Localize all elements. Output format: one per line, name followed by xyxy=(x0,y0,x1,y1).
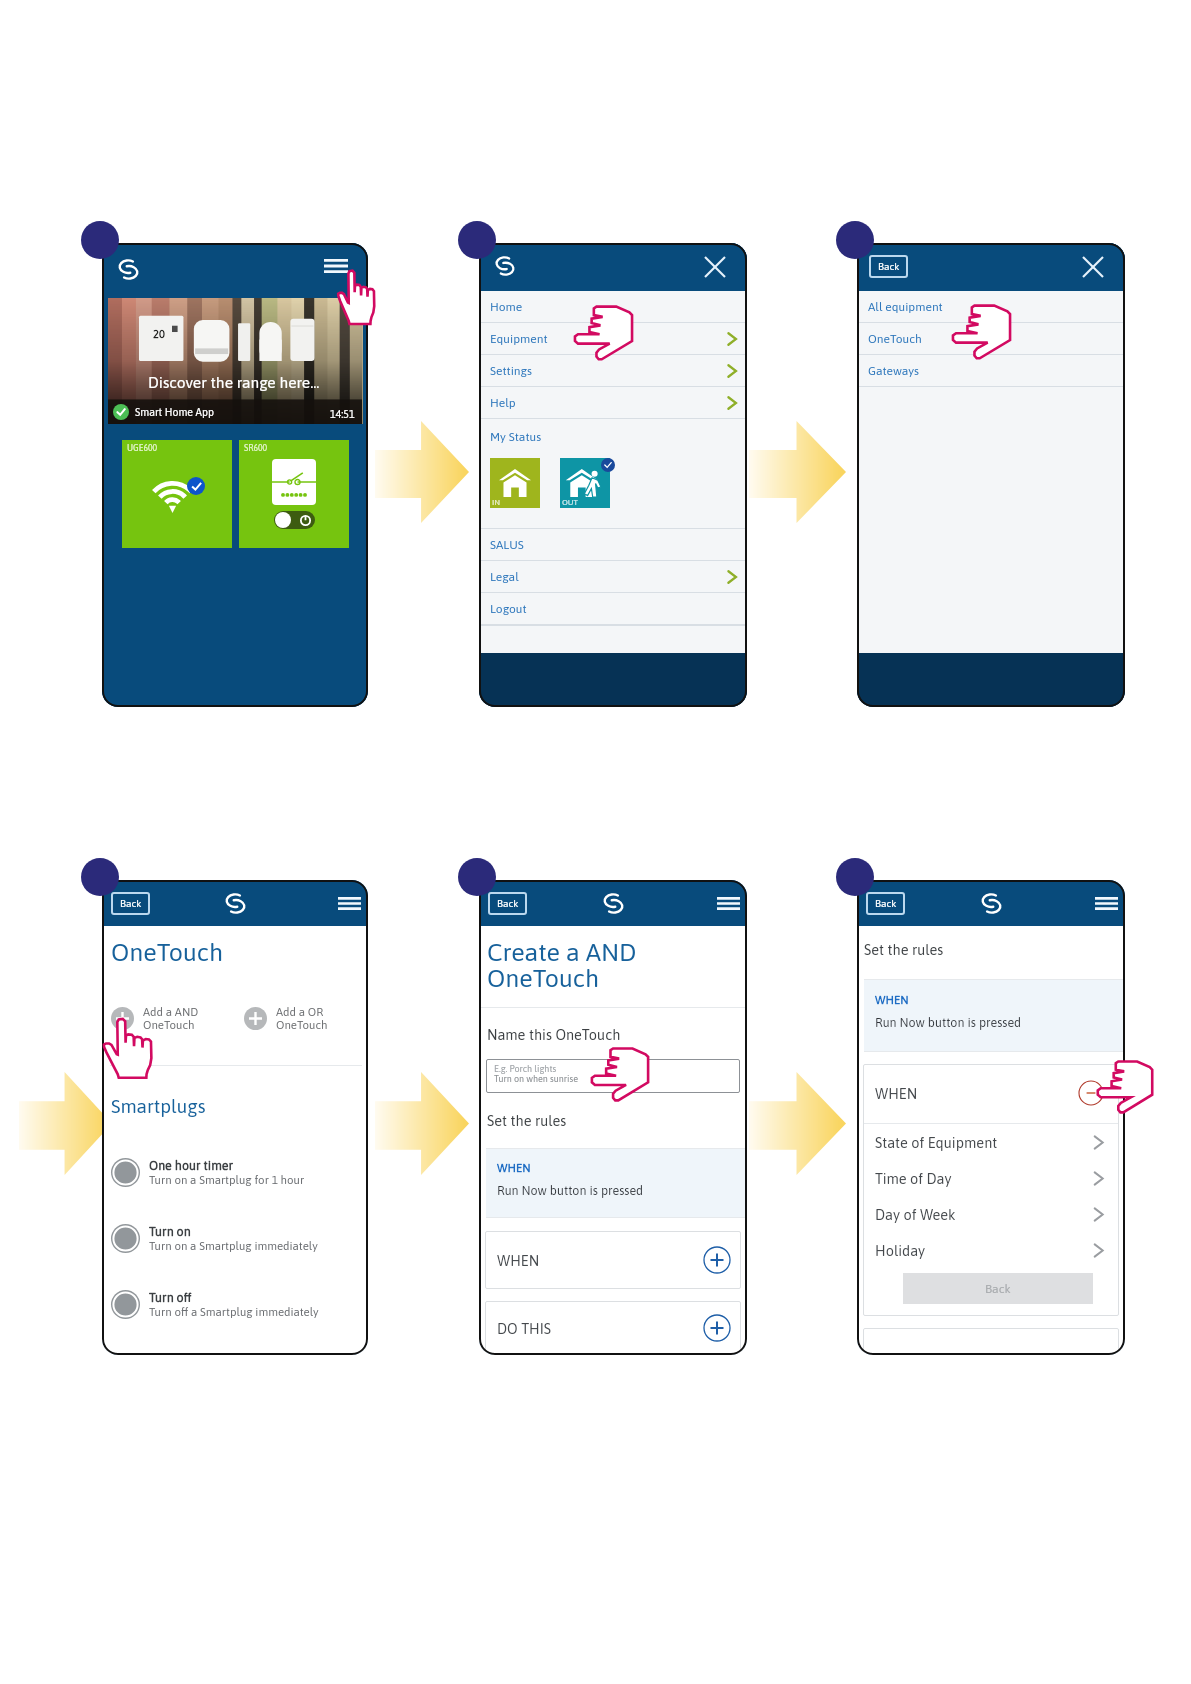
button[interactable]: Home xyxy=(479,291,747,322)
button[interactable]: SR600 xyxy=(239,440,349,548)
staticText: Smartplugs xyxy=(111,1095,206,1117)
staticText: Turn off xyxy=(149,1290,192,1304)
staticText: OUT xyxy=(562,498,578,507)
staticText: Back xyxy=(497,898,519,909)
staticText: Back xyxy=(985,1282,1011,1296)
button[interactable]: Back xyxy=(111,892,150,915)
button[interactable]: Back xyxy=(903,1273,1093,1304)
button[interactable]: Back xyxy=(866,892,905,915)
button[interactable]: Settings xyxy=(479,355,747,386)
staticText: Settings xyxy=(490,364,533,378)
staticText: Gateways xyxy=(868,364,920,378)
button[interactable]: Gateways xyxy=(857,355,1125,386)
button[interactable]: Back xyxy=(869,255,908,278)
button[interactable]: Day of Week xyxy=(863,1196,1119,1232)
button[interactable]: SALUS home xyxy=(495,257,515,275)
other: Close xyxy=(1083,257,1103,277)
button[interactable]: Turn on xyxy=(111,1205,368,1271)
button[interactable]: SALUS home xyxy=(225,894,246,913)
staticText: Run Now button is pressed xyxy=(497,1183,644,1197)
button[interactable]: SALUS home xyxy=(603,894,624,913)
other: Menu xyxy=(1095,897,1118,910)
button[interactable]: All equipment xyxy=(857,291,1125,322)
staticText: Turn on xyxy=(149,1224,191,1238)
button[interactable]: One hour timer xyxy=(111,1139,368,1205)
staticText: Add a OR OneTouch xyxy=(276,1005,328,1032)
other: Menu xyxy=(717,897,740,910)
staticText: Day of Week xyxy=(875,1206,956,1223)
staticText: Turn on a Smartplug for 1 hour xyxy=(149,1173,305,1186)
staticText: Turn on when sunrise xyxy=(494,1074,578,1084)
staticText: OneTouch xyxy=(868,332,922,346)
staticText: Turn off a Smartplug immediately xyxy=(149,1305,319,1318)
button[interactable]: Menu xyxy=(717,897,740,910)
button[interactable]: Menu xyxy=(324,259,348,273)
other: Menu xyxy=(338,897,361,910)
staticText: WHEN xyxy=(497,1161,531,1174)
staticText: Legal xyxy=(490,570,519,584)
button[interactable]: DO THIS xyxy=(485,1301,741,1355)
staticText: WHEN xyxy=(875,1085,918,1102)
button[interactable]: Legal xyxy=(479,561,747,592)
staticText: Create a AND OneTouch xyxy=(487,938,637,992)
button[interactable]: Logout xyxy=(479,593,747,624)
button[interactable]: WHEN xyxy=(863,1064,1119,1123)
button[interactable]: SALUS xyxy=(479,529,747,560)
staticText: Run Now button is pressed xyxy=(875,1015,1022,1029)
staticText: Time of Day xyxy=(875,1170,952,1187)
button[interactable] xyxy=(863,1328,1119,1355)
staticText: Smart Home App xyxy=(135,406,214,418)
button[interactable]: Add a AND OneTouch xyxy=(111,1005,199,1032)
staticText: DO THIS xyxy=(497,1320,552,1337)
staticText: Help xyxy=(490,396,516,410)
staticText: Set the rules xyxy=(864,941,944,958)
button[interactable]: Add a OR OneTouch xyxy=(244,1005,328,1032)
other: Menu xyxy=(324,259,348,273)
staticText: Holiday xyxy=(875,1242,926,1259)
staticText: Back xyxy=(875,898,897,909)
button[interactable]: State of Equipment xyxy=(863,1124,1119,1160)
staticText: WHEN xyxy=(497,1252,540,1269)
staticText: All equipment xyxy=(868,300,943,314)
button[interactable]: Holiday xyxy=(863,1232,1119,1268)
staticText: 14:51 xyxy=(330,408,355,420)
button[interactable]: OneTouch xyxy=(857,323,1125,354)
staticText: OneTouch xyxy=(111,938,224,967)
button[interactable]: Help xyxy=(479,387,747,418)
button[interactable]: Equipment xyxy=(479,323,747,354)
staticText: Discover the range here... xyxy=(148,374,320,392)
button[interactable]: Time of Day xyxy=(863,1160,1119,1196)
staticText: UGE600 xyxy=(127,443,158,453)
button[interactable]: WHEN xyxy=(485,1231,741,1289)
staticText: SALUS xyxy=(490,538,524,552)
button[interactable]: OUT xyxy=(560,458,610,508)
button[interactable]: Menu xyxy=(1095,897,1118,910)
staticText: Back xyxy=(120,898,142,909)
staticText: E.g. Porch lights xyxy=(494,1064,557,1074)
staticText: Set the rules xyxy=(487,1112,567,1129)
other: Close xyxy=(705,257,725,277)
staticText: One hour timer xyxy=(149,1158,234,1172)
button[interactable]: Back xyxy=(488,892,527,915)
staticText: Logout xyxy=(490,602,527,616)
button[interactable]: Close xyxy=(705,257,725,277)
staticText: IN xyxy=(492,498,501,507)
staticText: Turn on a Smartplug immediately xyxy=(149,1239,318,1252)
button[interactable]: UGE600 xyxy=(122,440,232,548)
staticText: State of Equipment xyxy=(875,1134,998,1151)
button[interactable]: E.g. Porch lights xyxy=(486,1059,740,1093)
staticText: Back xyxy=(878,261,900,272)
staticText: Home xyxy=(490,300,523,314)
staticText: Name this OneTouch xyxy=(487,1026,621,1043)
staticText: Add a AND OneTouch xyxy=(143,1005,199,1032)
staticText: SR600 xyxy=(244,443,268,453)
button[interactable]: Turn off xyxy=(111,1271,368,1337)
button[interactable]: SALUS home xyxy=(118,260,139,279)
staticText: Equipment xyxy=(490,332,548,346)
button[interactable]: SALUS home xyxy=(981,894,1002,913)
staticText: My Status xyxy=(490,430,542,444)
staticText: 20 xyxy=(153,328,165,341)
button[interactable]: Close xyxy=(1083,257,1103,277)
button[interactable]: Menu xyxy=(338,897,361,910)
button[interactable]: IN xyxy=(490,458,540,508)
